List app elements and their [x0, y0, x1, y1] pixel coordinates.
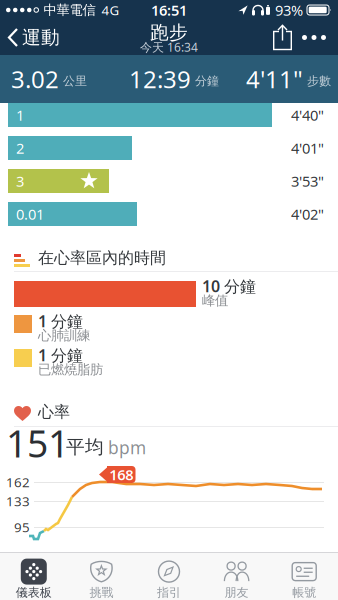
staticText: 151	[6, 418, 69, 468]
staticText: 4'40"	[291, 105, 324, 125]
staticText: 12:39	[129, 63, 191, 95]
staticText: 1 分鐘	[38, 310, 83, 332]
button[interactable]: More	[302, 35, 338, 40]
staticText: 步數	[307, 74, 331, 88]
staticText: 4'01"	[291, 138, 324, 158]
button[interactable]: 帳號	[270, 553, 338, 600]
staticText: 133	[6, 492, 30, 510]
staticText: 95	[14, 518, 30, 536]
button[interactable]: Share	[273, 24, 302, 50]
staticText: 0.01	[16, 204, 44, 224]
staticText: 心肺訓練	[38, 327, 90, 344]
staticText: 16:51	[151, 0, 187, 20]
staticText: bpm	[108, 436, 146, 459]
staticText: 今天 16:34	[140, 39, 198, 55]
staticText: 帳號	[292, 585, 316, 600]
staticText: 儀表板	[16, 585, 52, 600]
staticText: 已燃燒脂肪	[38, 361, 103, 378]
staticText: 在心率區內的時間	[38, 248, 166, 268]
button[interactable]: 朋友	[203, 553, 270, 600]
staticText: 2	[16, 138, 24, 158]
staticText: 分鐘	[195, 74, 219, 88]
staticText: 峰值	[202, 292, 228, 309]
staticText: 162	[6, 473, 30, 491]
button[interactable]: 運動	[0, 26, 60, 49]
staticText: 3	[16, 171, 24, 191]
staticText: 平均	[66, 435, 104, 458]
staticText: 1	[16, 105, 24, 125]
staticText: 指引	[157, 585, 181, 600]
staticText: 4'11"	[246, 63, 303, 95]
staticText: 挑戰	[89, 585, 113, 600]
button[interactable]: 儀表板	[0, 553, 68, 600]
staticText: 10 分鐘	[202, 275, 256, 297]
staticText: 3.02	[11, 63, 59, 95]
staticText: 跑步	[150, 21, 188, 44]
button[interactable]: 挑戰	[68, 553, 135, 600]
staticText: 公里	[63, 74, 87, 88]
staticText: 心率	[38, 402, 70, 422]
staticText: 運動	[22, 26, 60, 49]
staticText: 168	[109, 465, 133, 484]
staticText: 朋友	[225, 585, 249, 600]
staticText: 4G	[101, 1, 119, 19]
button[interactable]: 指引	[135, 553, 203, 600]
staticText: 4'02"	[291, 204, 324, 224]
staticText: 3'53"	[291, 171, 324, 191]
staticText: 93%	[275, 0, 303, 20]
staticText: 中華電信	[43, 2, 95, 18]
staticText: 1 分鐘	[38, 344, 83, 366]
